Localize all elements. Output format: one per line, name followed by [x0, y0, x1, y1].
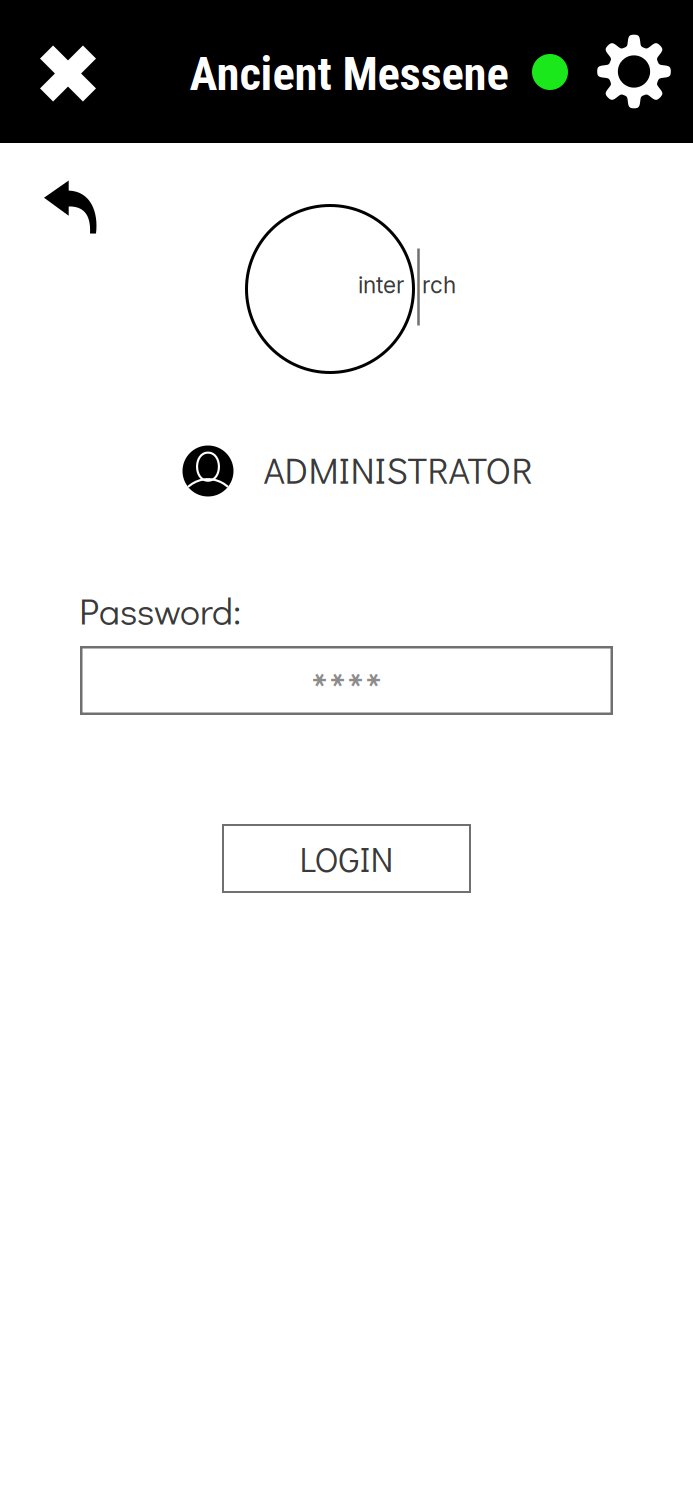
button[interactable]: LOGIN	[222, 824, 471, 893]
staticText: rch	[422, 271, 456, 299]
button[interactable]: Close	[2, 4, 134, 143]
staticText: Password:	[79, 585, 241, 634]
staticText: inter	[358, 271, 404, 299]
staticText: LOGIN	[299, 836, 393, 881]
staticText: Ancient Messene	[189, 47, 508, 101]
button[interactable]: Back	[14, 155, 126, 259]
staticText: ****	[310, 656, 382, 723]
staticText: ADMINISTRATOR	[263, 445, 532, 494]
button[interactable]: Password	[80, 646, 613, 715]
button[interactable]: Settings	[584, 0, 684, 143]
